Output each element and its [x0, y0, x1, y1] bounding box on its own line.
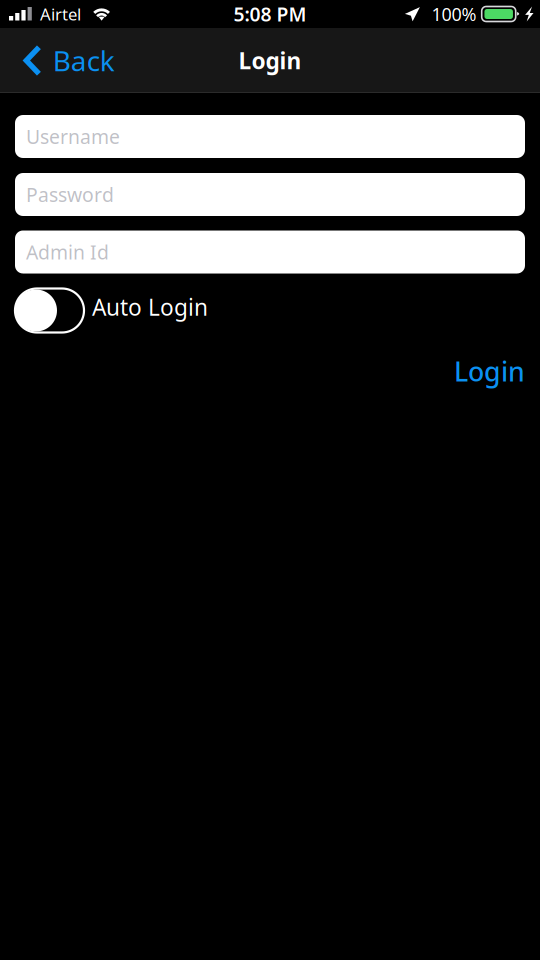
staticText: 5:08 PM — [233, 1, 306, 27]
staticText: 100% — [431, 2, 476, 26]
staticText: Airtel — [40, 3, 81, 25]
button[interactable]: Back — [0, 28, 127, 93]
staticText: Login — [454, 353, 525, 389]
button[interactable]: Login — [454, 353, 525, 389]
staticText: Login — [238, 45, 301, 75]
button[interactable]: Password — [15, 173, 525, 216]
staticText: Password — [26, 182, 114, 207]
button[interactable]: Auto Login — [15, 288, 84, 332]
staticText: Username — [26, 124, 120, 149]
button[interactable]: Admin Id — [15, 230, 525, 273]
staticText: Back — [53, 42, 115, 79]
staticText: Auto Login — [92, 292, 208, 322]
staticText: Admin Id — [26, 239, 109, 265]
button[interactable]: Username — [15, 115, 525, 158]
